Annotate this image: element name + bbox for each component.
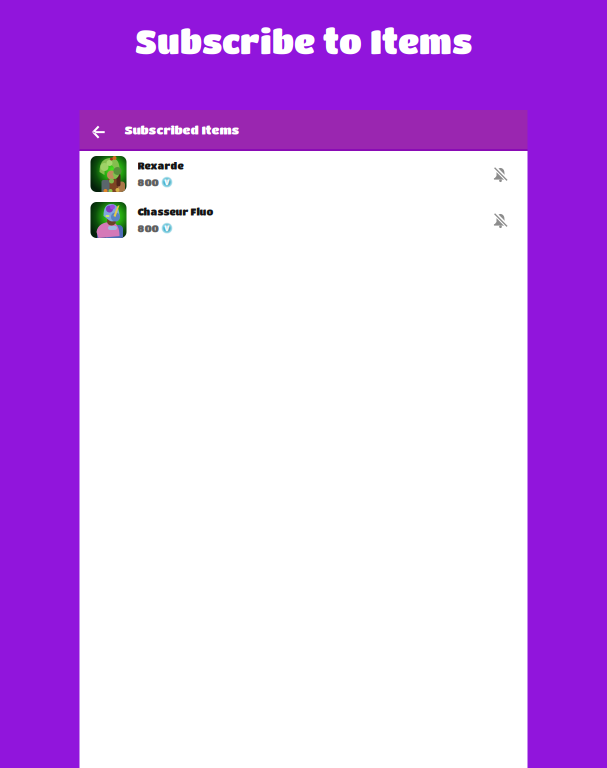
staticText: Rexarde	[137, 160, 183, 171]
staticText: Subscribe to Items	[135, 22, 472, 60]
button[interactable]: Turn on notifications for Rexarde	[480, 151, 527, 197]
button[interactable]: Back	[79, 110, 124, 149]
staticText: 800	[137, 222, 158, 234]
staticText: Subscribed Items	[124, 122, 239, 137]
staticText: V	[164, 178, 170, 186]
button[interactable]: Chasseur Fluo	[79, 197, 480, 243]
staticText: V	[164, 224, 170, 232]
staticText: Chasseur Fluo	[137, 206, 213, 217]
staticText: 800	[137, 176, 158, 188]
button[interactable]: Turn on notifications for Chasseur Fluo	[480, 197, 527, 243]
button[interactable]: Rexarde	[79, 151, 480, 197]
